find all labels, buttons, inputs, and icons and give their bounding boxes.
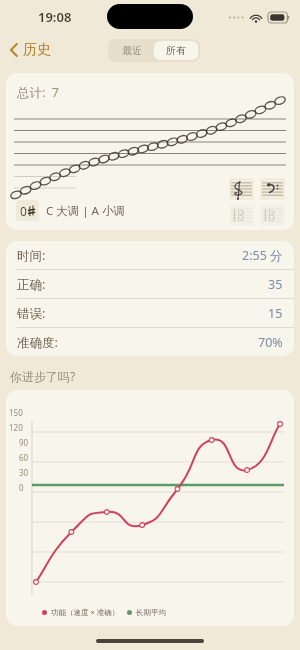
staticText: 0 (20, 203, 27, 219)
button[interactable]: Alto clef (229, 204, 254, 226)
staticText: 最近 (122, 44, 142, 57)
button[interactable]: 所有 (154, 41, 198, 60)
staticText: C 大调 | A 小调 (46, 203, 125, 219)
staticText: 总计: 7 (17, 84, 60, 101)
button[interactable]: 最近 (110, 41, 154, 60)
button[interactable]: Bass clef (260, 178, 285, 200)
staticText: 历史 (23, 41, 51, 59)
staticText: 2:55 分 (242, 247, 283, 264)
button[interactable]: 正确: (6, 270, 294, 298)
staticText: 30 (19, 467, 29, 478)
staticText: 你进步了吗? (10, 368, 76, 384)
staticText: 所有 (166, 44, 186, 57)
staticText: 150 (9, 407, 23, 418)
staticText: 70% (258, 334, 283, 351)
staticText: 长期平均 (136, 608, 166, 617)
button[interactable]: 错误: (6, 299, 294, 327)
staticText: 120 (9, 422, 23, 433)
staticText: 15 (268, 305, 283, 322)
button[interactable]: 时间: (6, 241, 294, 269)
staticText: 错误: (17, 305, 46, 322)
button[interactable]: Tenor clef (260, 204, 285, 226)
button[interactable]: 准确度: (6, 328, 294, 356)
button[interactable]: 历史 (6, 38, 55, 62)
button[interactable]: 0 (16, 200, 125, 221)
button[interactable]: Treble clef (229, 178, 254, 200)
button[interactable]: 总计: 7 (6, 73, 294, 230)
staticText: 时间: (17, 247, 46, 264)
staticText: 准确度: (17, 334, 58, 351)
staticText: 0 (19, 482, 24, 493)
staticText: 90 (19, 437, 29, 448)
staticText: 正确: (17, 276, 46, 293)
button[interactable]: 150 (6, 390, 294, 626)
staticText: 35 (268, 276, 283, 293)
staticText: 60 (19, 452, 29, 463)
staticText: 功能（速度 × 准确） (51, 607, 120, 617)
staticText: 19:08 (38, 8, 72, 26)
